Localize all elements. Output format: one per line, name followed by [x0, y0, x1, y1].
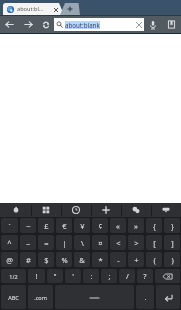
staticText: ; [108, 271, 111, 281]
button[interactable]: ` [1, 218, 18, 233]
button[interactable]: - [110, 252, 126, 267]
button[interactable]: « [110, 218, 126, 233]
staticText: ` [8, 221, 11, 231]
button[interactable]: & [74, 252, 90, 267]
button[interactable]: ^ [1, 235, 18, 250]
button[interactable]: ! [28, 269, 45, 283]
button[interactable]: ABC [1, 285, 26, 309]
button[interactable]: ? [137, 269, 153, 283]
staticText: > [134, 238, 139, 248]
button[interactable]: Forward [19, 16, 37, 33]
button[interactable]: * [92, 252, 108, 267]
button[interactable]: Bookmark [162, 16, 180, 33]
staticText: ¢ [98, 221, 103, 231]
staticText: about:blank [65, 21, 100, 29]
staticText: 1/2 [9, 273, 18, 280]
staticText: ] [171, 238, 174, 248]
button[interactable]: $ [38, 252, 54, 267]
button[interactable]: = [38, 235, 54, 250]
button[interactable]: Go [156, 285, 180, 309]
button[interactable]: £ [38, 218, 54, 233]
staticText: - [117, 255, 120, 265]
button[interactable]: ) [164, 252, 180, 267]
button[interactable]: < [110, 235, 126, 250]
button[interactable]: € [56, 218, 72, 233]
staticText: « [116, 221, 120, 231]
staticText: % [61, 255, 68, 265]
staticText: ! [35, 271, 38, 281]
staticText: .com [34, 294, 47, 301]
button[interactable]: { [146, 218, 162, 233]
button[interactable]: } [164, 218, 180, 233]
staticText: } [171, 221, 174, 231]
staticText: ? [143, 271, 147, 281]
button[interactable]: [ [146, 235, 162, 250]
button[interactable]: Close tab [52, 6, 59, 13]
button[interactable]: New tab [60, 3, 80, 15]
button[interactable]: Voice search [144, 16, 162, 33]
button[interactable]: + [128, 252, 144, 267]
button[interactable]: Add [91, 203, 121, 217]
button[interactable]: > [128, 235, 144, 250]
button[interactable]: Clear [134, 20, 143, 29]
staticText: { [153, 221, 156, 231]
button[interactable]: \ [74, 235, 90, 250]
button[interactable]: Space [55, 285, 134, 309]
button[interactable]: @ [1, 252, 18, 267]
button[interactable]: | [56, 235, 72, 250]
button[interactable]: " [47, 269, 63, 283]
button[interactable]: ¥ [74, 218, 90, 233]
staticText: * [98, 255, 103, 265]
button[interactable]: Reload [37, 16, 54, 33]
staticText: ABC [8, 294, 19, 301]
staticText: . [144, 292, 147, 302]
staticText: < [116, 238, 121, 248]
button[interactable]: % [56, 252, 72, 267]
staticText: @ [6, 255, 13, 265]
staticText: ( [153, 255, 156, 265]
button[interactable]: – [20, 235, 36, 250]
staticText: = [44, 238, 49, 248]
staticText: | [62, 238, 67, 248]
staticText: » [134, 221, 138, 231]
button[interactable]: 1/2 [1, 269, 26, 283]
staticText: / [126, 271, 129, 281]
button[interactable]: Categories [31, 203, 61, 217]
staticText: [ [153, 238, 156, 248]
button[interactable]: / [119, 269, 135, 283]
button[interactable]: .com [28, 285, 53, 309]
staticText: about:bl... [17, 5, 44, 13]
button[interactable]: Backspace [155, 269, 180, 283]
button[interactable]: ~ [20, 218, 36, 233]
staticText: € [62, 221, 67, 231]
staticText: $ [44, 255, 49, 265]
button[interactable]: ; [101, 269, 117, 283]
staticText: & [79, 255, 85, 265]
button[interactable]: Emoji [0, 203, 31, 217]
button[interactable]: . [136, 285, 154, 309]
staticText: ' [72, 271, 74, 281]
button[interactable]: about:bl... [3, 3, 64, 15]
button[interactable]: ¤ [92, 235, 108, 250]
button[interactable]: Stickers [121, 203, 151, 217]
button[interactable]: Back [0, 16, 19, 33]
staticText: ¥ [80, 221, 85, 231]
button[interactable]: # [20, 252, 36, 267]
button[interactable]: Recent [61, 203, 91, 217]
staticText: " [53, 271, 57, 281]
staticText: ¤ [98, 238, 103, 248]
button[interactable]: ' [65, 269, 81, 283]
staticText: : [90, 271, 93, 281]
staticText: ) [171, 255, 174, 265]
button[interactable]: » [128, 218, 144, 233]
staticText: \ [81, 238, 84, 248]
button[interactable]: ¢ [92, 218, 108, 233]
button[interactable]: about:blank [54, 18, 144, 31]
staticText: ^ [7, 238, 12, 248]
button[interactable]: ] [164, 235, 180, 250]
button[interactable]: : [83, 269, 99, 283]
button[interactable]: ( [146, 252, 162, 267]
staticText: + [134, 255, 139, 265]
button[interactable]: Hide keyboard [151, 203, 181, 217]
staticText: # [26, 255, 31, 265]
